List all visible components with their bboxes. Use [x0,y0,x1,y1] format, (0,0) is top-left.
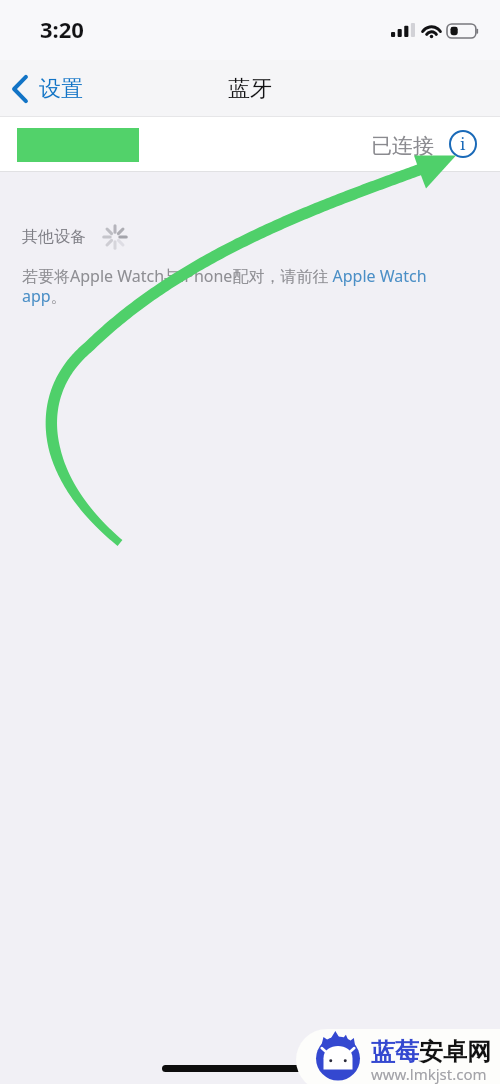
staticText: 设置 [39,75,83,103]
staticText: 安卓网 [419,1037,491,1067]
staticText: 蓝莓 [371,1037,419,1067]
staticText: i [460,132,466,155]
staticText: 若要将Apple Watch与iPhone配对，请前往 Apple Watch … [22,265,458,307]
staticText: 蓝牙 [228,75,272,103]
button[interactable]: 设置 [4,71,93,107]
staticText: 3:20 [40,14,84,44]
button[interactable]: Apple Watch, 已连接 [0,117,500,172]
staticText: 其他设备 [22,227,86,247]
button[interactable]: Device info [446,127,480,161]
staticText: 已连接 [371,133,434,159]
staticText: www.lmkjst.com [371,1064,487,1084]
button[interactable]: 已连接 [371,130,480,164]
